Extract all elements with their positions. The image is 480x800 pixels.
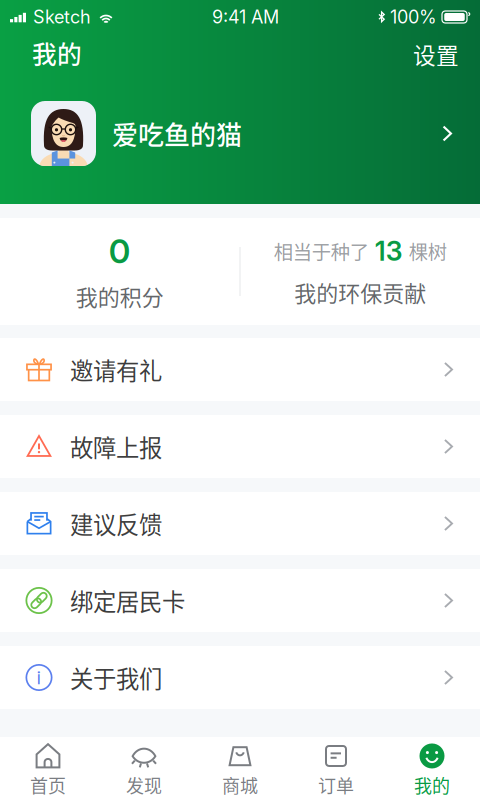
staticText: 我的 [414,772,450,798]
staticText: 我的积分 [76,280,164,312]
button[interactable]: 发现 [96,737,192,800]
staticText: 绑定居民卡 [70,584,185,617]
staticText: 邀请有礼 [70,353,162,386]
staticText: i [36,666,41,689]
staticText: 9:41 AM [212,6,279,28]
staticText: 我的 [32,35,82,71]
button[interactable]: 建议反馈 [0,492,480,555]
staticText: 设置 [413,38,459,70]
button[interactable]: 爱吃鱼的猫 [0,101,480,166]
button[interactable]: 商城 [192,737,288,800]
staticText: 发现 [126,772,162,798]
button[interactable]: 绑定居民卡 [0,569,480,632]
staticText: 商城 [222,772,258,798]
staticText: 我的环保贡献 [294,276,426,308]
button[interactable]: 邀请有礼 [0,338,480,401]
staticText: 相当于种了 [274,237,369,265]
button[interactable]: 首页 [0,737,96,800]
staticText: 首页 [30,772,66,798]
staticText: 建议反馈 [70,507,162,540]
staticText: 故障上报 [70,430,162,463]
button[interactable]: 故障上报 [0,415,480,478]
staticText: 爱吃鱼的猫 [112,115,242,152]
staticText: 13 [375,235,403,267]
staticText: Sketch [33,6,91,28]
button[interactable]: 我的 [384,737,480,800]
button[interactable]: 设置 [393,29,459,77]
staticText: 棵树 [409,237,447,265]
staticText: 订单 [318,772,354,798]
staticText: 0 [109,231,131,271]
staticText: 关于我们 [70,661,162,694]
button[interactable]: 订单 [288,737,384,800]
staticText: 100% [390,6,437,28]
button[interactable]: i [0,646,480,709]
